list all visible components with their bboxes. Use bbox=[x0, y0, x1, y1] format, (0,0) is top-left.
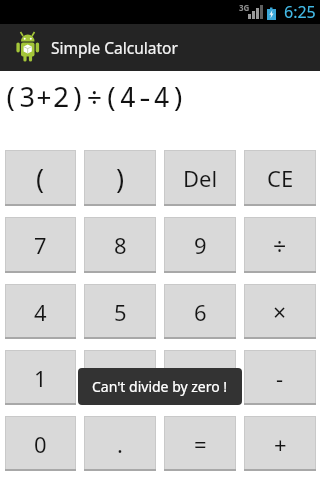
button[interactable]: . bbox=[84, 416, 156, 471]
button[interactable]: = bbox=[164, 416, 236, 471]
staticText: 4 bbox=[34, 297, 47, 327]
button[interactable]: ( bbox=[5, 150, 76, 206]
button[interactable]: 8 bbox=[84, 217, 156, 273]
staticText: 2 bbox=[114, 363, 127, 393]
button[interactable]: 9 bbox=[164, 217, 236, 273]
staticText: CE bbox=[267, 163, 294, 193]
button[interactable]: × bbox=[244, 284, 316, 339]
staticText: 6:25 bbox=[284, 1, 316, 23]
staticText: × bbox=[273, 296, 287, 327]
staticText: 5 bbox=[114, 297, 127, 327]
button[interactable]: ÷ bbox=[244, 217, 316, 273]
staticText: ( bbox=[36, 160, 45, 197]
button[interactable]: CE bbox=[244, 150, 316, 206]
button[interactable]: 0 bbox=[5, 416, 76, 471]
staticText: Simple Calculator bbox=[51, 37, 178, 58]
button[interactable]: - bbox=[244, 350, 316, 405]
staticText: 6 bbox=[194, 297, 207, 327]
button[interactable]: 4 bbox=[5, 284, 76, 339]
button[interactable]: 1 bbox=[5, 350, 76, 405]
staticText: Del bbox=[183, 163, 218, 193]
button[interactable]: ) bbox=[84, 150, 156, 206]
staticText: . bbox=[117, 429, 123, 459]
button[interactable]: + bbox=[244, 416, 316, 471]
staticText: 7 bbox=[34, 230, 47, 260]
staticText: ) bbox=[116, 160, 125, 197]
staticText: = bbox=[194, 429, 207, 459]
staticText: 3 bbox=[194, 363, 207, 393]
staticText: + bbox=[274, 429, 287, 459]
button[interactable]: 5 bbox=[84, 284, 156, 339]
staticText: 8 bbox=[114, 230, 127, 260]
button[interactable]: 3 bbox=[164, 350, 236, 405]
staticText: 9 bbox=[194, 230, 207, 260]
staticText: - bbox=[276, 363, 284, 393]
staticText: 0 bbox=[34, 429, 47, 459]
staticText: 1 bbox=[34, 363, 47, 393]
staticText: Can't divide by zero ! bbox=[92, 377, 228, 396]
staticText: ÷ bbox=[273, 230, 287, 261]
button[interactable]: 7 bbox=[5, 217, 76, 273]
button[interactable]: 2 bbox=[84, 350, 156, 405]
staticText: 3G bbox=[239, 2, 250, 13]
staticText: (3+2)÷(4-4) bbox=[2, 77, 187, 115]
button[interactable]: Del bbox=[164, 150, 236, 206]
button[interactable]: 6 bbox=[164, 284, 236, 339]
